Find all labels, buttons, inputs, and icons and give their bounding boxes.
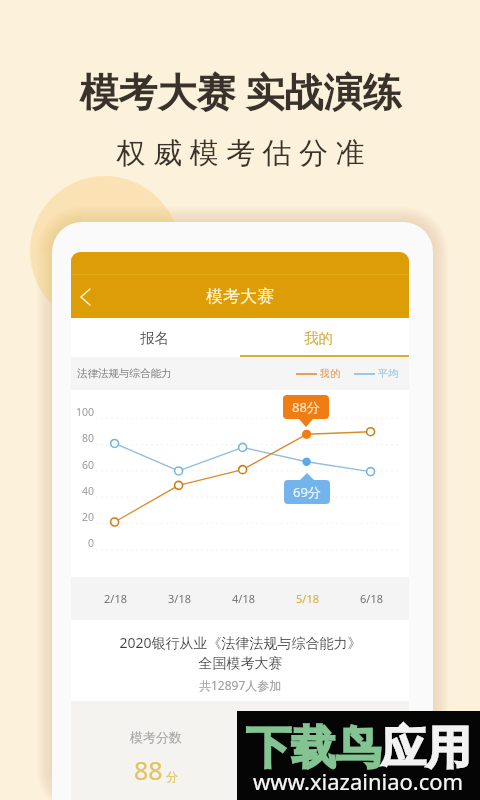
staticText: 我的 xyxy=(304,329,333,347)
staticText: 69分 xyxy=(293,483,321,501)
staticText: 20 xyxy=(82,510,95,524)
staticText: 88 xyxy=(134,753,163,787)
staticText: 2020银行从业《法律法规与综合能力》 全国模考大赛 xyxy=(119,633,362,672)
staticText: 60 xyxy=(82,458,95,472)
button[interactable]: 全国排名 xyxy=(240,701,409,800)
staticText: 3/18 xyxy=(168,591,191,606)
staticText: 80 xyxy=(82,431,95,445)
staticText: 100 xyxy=(76,405,95,419)
staticText: 分 xyxy=(166,769,178,784)
staticText: 125 xyxy=(296,753,339,787)
staticText: 报名 xyxy=(140,329,169,347)
button[interactable]: 我的 xyxy=(240,318,409,357)
staticText: 共12897人参加 xyxy=(199,677,282,693)
staticText: 我的 xyxy=(320,367,340,380)
staticText: 全国排名 xyxy=(299,729,351,745)
staticText: 5/18 xyxy=(296,591,319,606)
staticText: 平均 xyxy=(378,367,398,380)
staticText: 分 xyxy=(342,769,354,784)
staticText: 4/18 xyxy=(232,591,255,606)
staticText: 权 威 模 考 估 分 准 xyxy=(116,132,365,172)
staticText: 40 xyxy=(82,484,95,498)
staticText: 模考分数 xyxy=(130,729,182,745)
staticText: 模考大赛 实战演练 xyxy=(79,64,402,117)
button[interactable]: Back xyxy=(72,284,98,310)
staticText: 88分 xyxy=(292,398,320,416)
staticText: 模考大赛 xyxy=(206,286,274,307)
staticText: 0 xyxy=(88,536,95,550)
button[interactable]: 报名 xyxy=(71,318,240,357)
staticText: 6/18 xyxy=(360,591,383,606)
staticText: 下载鸟 xyxy=(246,720,381,777)
button[interactable]: 模考分数 xyxy=(71,701,240,800)
staticText: 应用 xyxy=(381,720,471,777)
staticText: www.xiazainiao.com xyxy=(253,766,464,796)
staticText: 法律法规与综合能力 xyxy=(77,367,172,380)
staticText: 2/18 xyxy=(104,591,127,606)
